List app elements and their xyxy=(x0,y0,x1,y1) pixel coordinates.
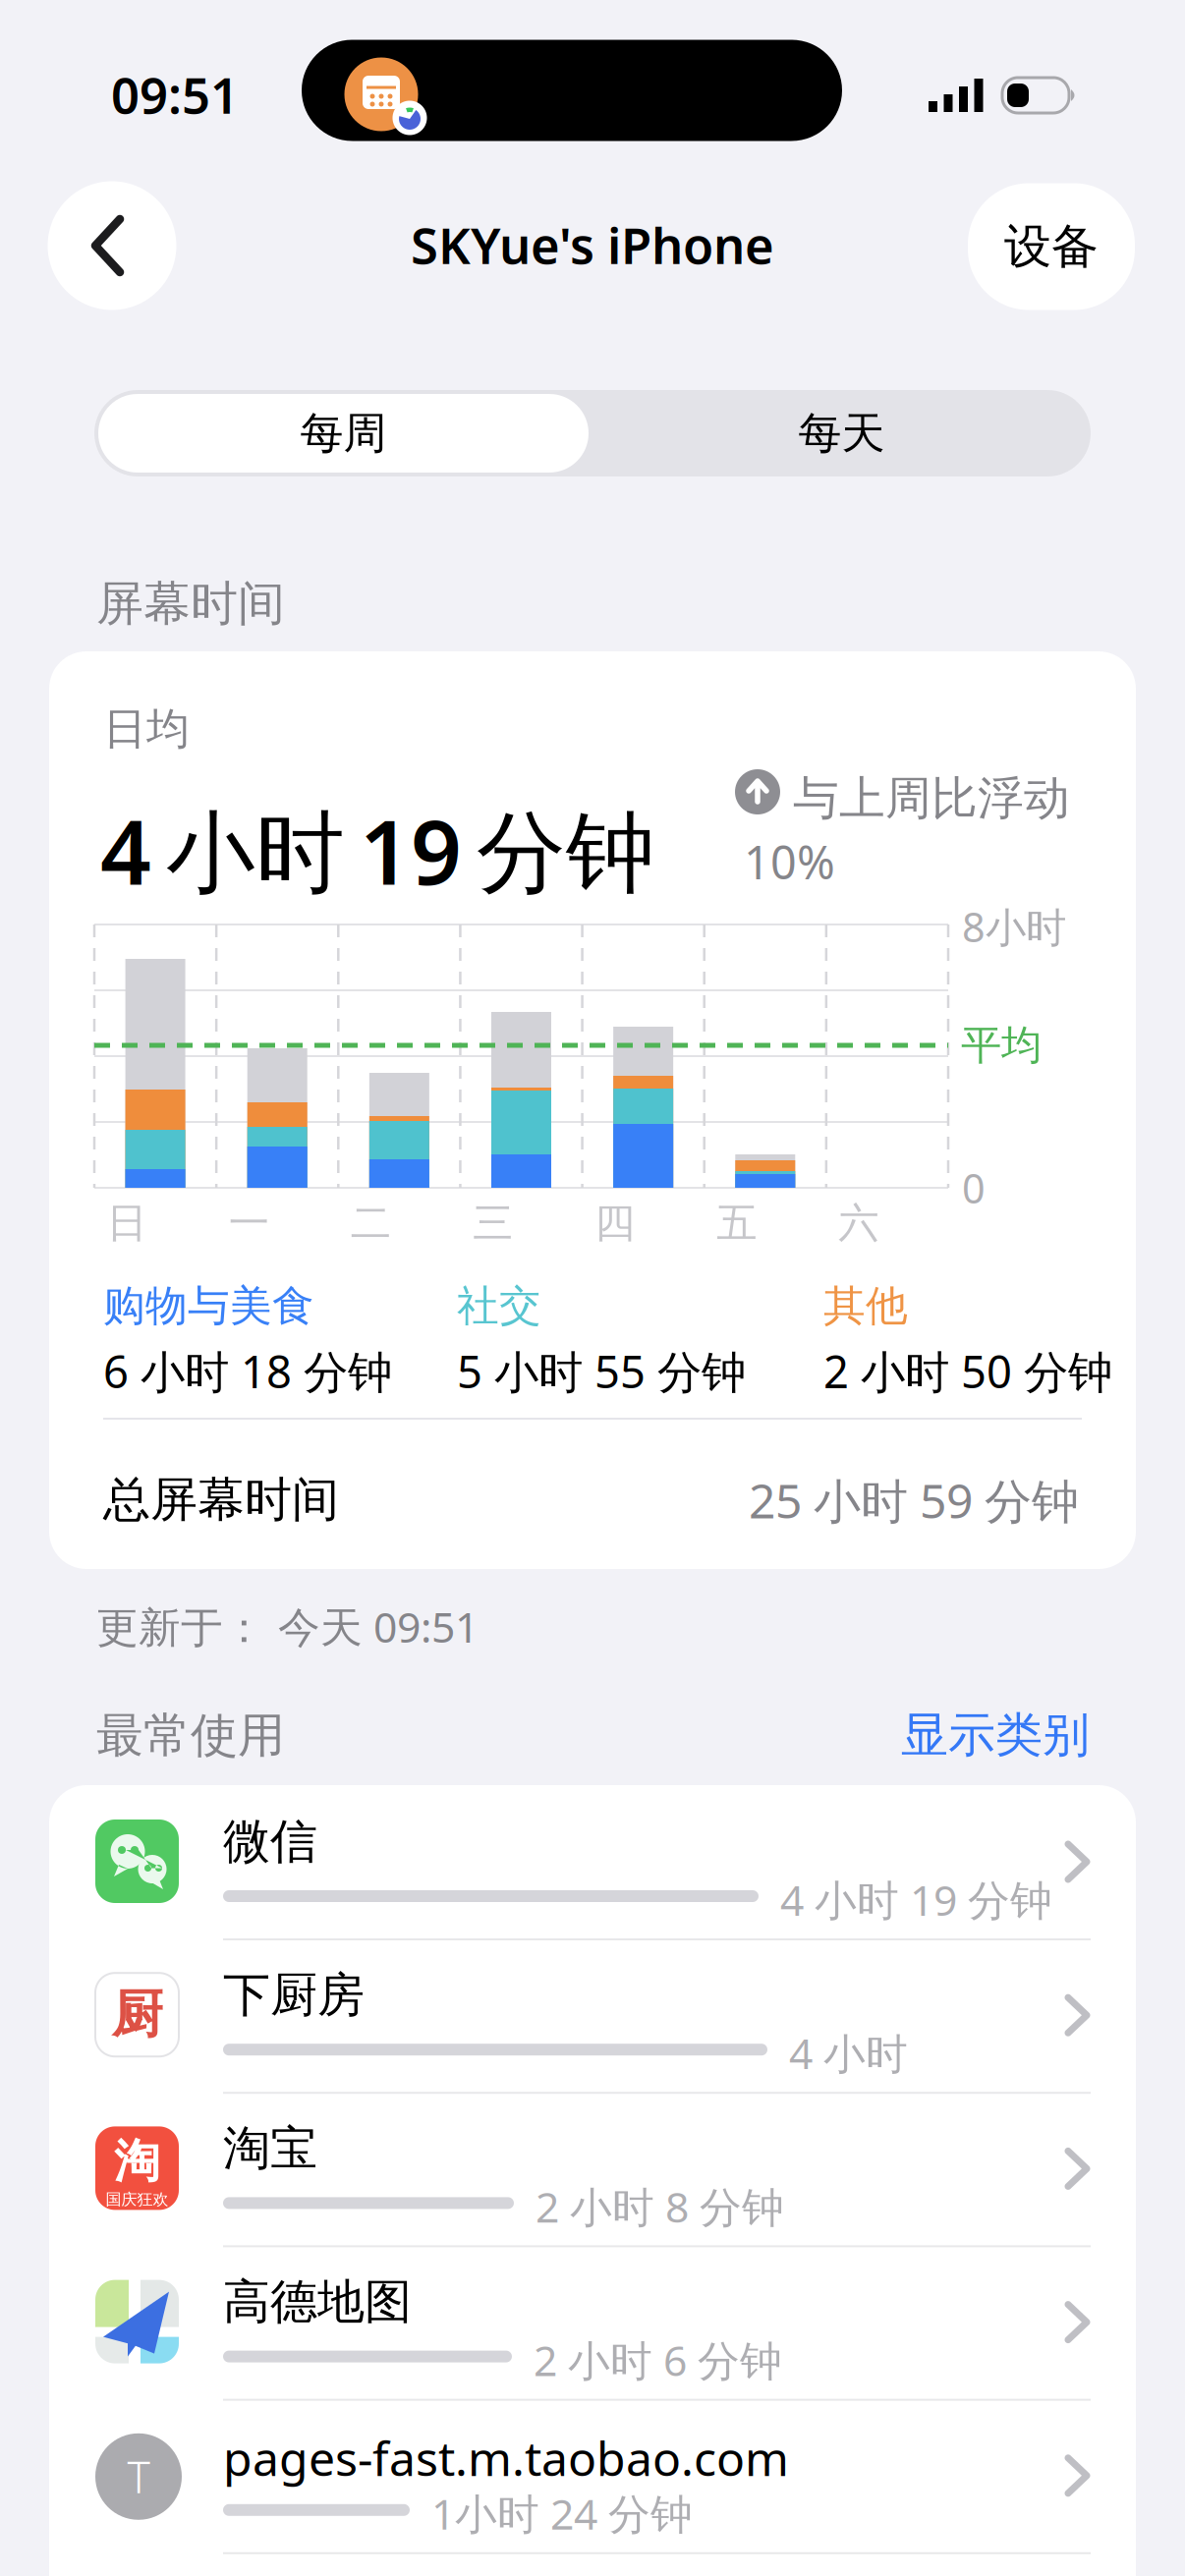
button[interactable]: Back xyxy=(48,181,176,310)
staticText: 平均 xyxy=(961,1020,1042,1070)
staticText: 日 xyxy=(107,1198,147,1248)
staticText: 五 xyxy=(717,1198,757,1248)
staticText: 国庆狂欢 xyxy=(106,2190,169,2209)
staticText: 显示类别 xyxy=(901,1706,1090,1764)
staticText: 三 xyxy=(473,1198,513,1248)
staticText: 每天 xyxy=(798,407,885,460)
staticText: 淘 xyxy=(114,2133,160,2190)
button[interactable]: 每天 xyxy=(596,394,1087,473)
staticText: 屏幕时间 xyxy=(96,575,285,633)
staticText: pages-fast.m.taobao.com xyxy=(223,2426,789,2489)
button[interactable]: 高德地图 xyxy=(49,2246,1136,2398)
staticText: 社交 xyxy=(457,1280,541,1332)
staticText: 总屏幕时间 xyxy=(103,1471,339,1529)
button[interactable]: 微信 xyxy=(49,1785,1136,1937)
staticText: 微信 xyxy=(223,1813,317,1871)
staticText: 二 xyxy=(351,1198,391,1248)
staticText: 最常使用 xyxy=(96,1707,285,1764)
staticText: 4 小时 xyxy=(789,2025,908,2081)
staticText: 淘宝 xyxy=(223,2120,317,2178)
staticText: 一 xyxy=(229,1198,269,1248)
staticText: T xyxy=(127,2448,150,2505)
staticText: 25 小时 59 分钟 xyxy=(749,1469,1079,1531)
button[interactable]: 每周 xyxy=(98,394,589,473)
staticText: 下厨房 xyxy=(223,1966,365,2024)
button[interactable]: 设备 xyxy=(968,183,1135,310)
button[interactable]: 显示类别 xyxy=(901,1706,1090,1764)
staticText: 更新于： 今天 09:51 xyxy=(96,1598,479,1654)
staticText: 每周 xyxy=(300,407,387,460)
staticText: 2 小时 50 分钟 xyxy=(823,1341,1112,1401)
staticText: 六 xyxy=(839,1198,879,1248)
staticText: 与上周比浮动 xyxy=(793,770,1070,827)
staticText: 2 小时 6 分钟 xyxy=(534,2332,782,2388)
staticText: 6 小时 18 分钟 xyxy=(103,1341,392,1401)
staticText: 2 小时 8 分钟 xyxy=(536,2178,784,2234)
staticText: 购物与美食 xyxy=(103,1280,314,1332)
staticText: 1小时 24 分钟 xyxy=(431,2485,693,2541)
staticText: 高德地图 xyxy=(223,2273,412,2331)
staticText: 4 小时 19 分钟 xyxy=(780,1872,1052,1927)
staticText: 5 小时 55 分钟 xyxy=(457,1341,746,1401)
staticText: 09:51 xyxy=(111,61,239,127)
staticText: 10% xyxy=(744,831,835,892)
staticText: SKYue's iPhone xyxy=(411,212,774,278)
staticText: 0 xyxy=(962,1161,986,1215)
staticText: 设备 xyxy=(1004,218,1099,276)
staticText: 日均 xyxy=(103,702,190,756)
staticText: 4 小时 19 分钟 xyxy=(100,791,655,909)
button[interactable]: 厨 xyxy=(49,1939,1136,2091)
button[interactable]: 淘 xyxy=(49,2092,1136,2244)
button[interactable]: T xyxy=(49,2399,1136,2551)
staticText: 8小时 xyxy=(962,900,1066,953)
staticText: 厨 xyxy=(112,1983,163,2046)
staticText: 四 xyxy=(595,1198,635,1248)
staticText: 其他 xyxy=(823,1280,908,1332)
